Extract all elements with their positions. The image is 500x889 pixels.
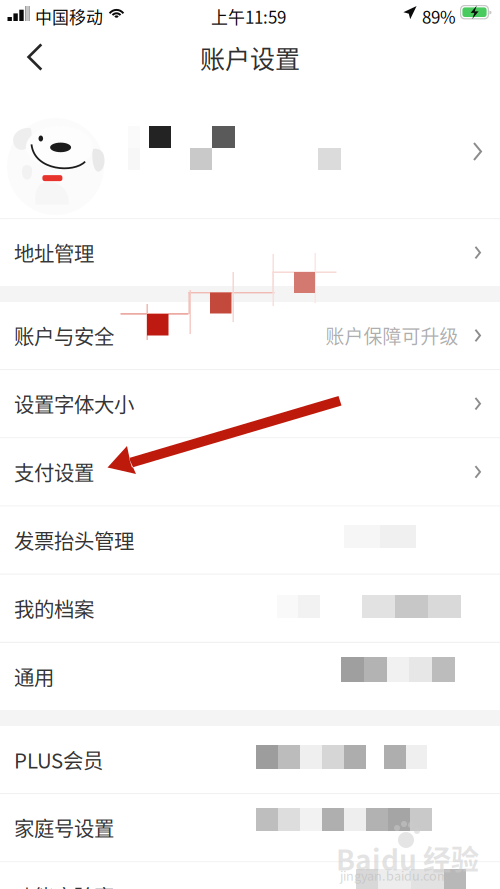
staticText: jingyan.baidu.com (340, 866, 449, 884)
staticText: 账户与安全 (14, 321, 114, 350)
button[interactable]: PLUS会员 (0, 726, 500, 793)
staticText: 支付设置 (14, 457, 94, 487)
staticText: 发票抬头管理 (14, 525, 134, 555)
staticText: 我的档案 (14, 593, 94, 623)
button[interactable]: Back (12, 34, 58, 80)
staticText: 89% (422, 4, 456, 29)
staticText: 账户保障可升级 (325, 322, 458, 349)
staticText: PLUS会员 (14, 745, 103, 774)
staticText: Baidu 经验 (336, 838, 479, 878)
staticText: 功能实验室 (14, 881, 114, 889)
button[interactable]: 账户与安全 (0, 302, 500, 369)
button[interactable]: 设置字体大小 (0, 370, 500, 437)
button[interactable]: 通用 (0, 643, 500, 710)
staticText: 地址管理 (14, 238, 94, 267)
staticText: 家庭号设置 (14, 813, 114, 842)
button[interactable]: 我的档案 (0, 575, 500, 642)
staticText: 通用 (14, 662, 54, 691)
button[interactable]: 家庭号设置 (0, 794, 500, 861)
button[interactable]: 支付设置 (0, 438, 500, 505)
staticText: 账户设置 (200, 39, 300, 76)
staticText: 设置字体大小 (14, 389, 134, 418)
staticText: 中国移动 (35, 4, 103, 29)
button[interactable]: 发票抬头管理 (0, 507, 500, 574)
staticText: 上午11:59 (211, 4, 286, 29)
button[interactable] (0, 85, 500, 218)
button[interactable]: 地址管理 (0, 219, 500, 286)
button[interactable]: 功能实验室 (0, 862, 500, 889)
